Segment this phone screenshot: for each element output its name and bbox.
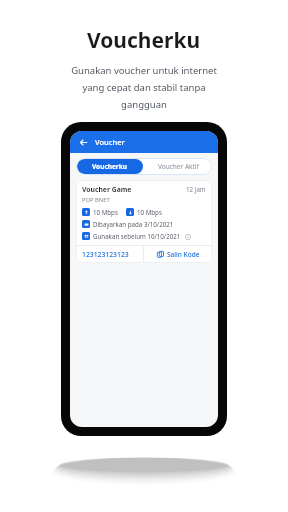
staticText: Salin Kode [167, 250, 200, 259]
staticText: Voucher [95, 137, 125, 147]
staticText: Voucher Aktif [158, 162, 199, 171]
staticText: Dibayarkan pada 3/10/2021 [93, 220, 174, 228]
staticText: Gunakan voucher untuk internet [71, 64, 217, 77]
button[interactable]: Info [184, 233, 191, 240]
button[interactable]: Voucherku [77, 159, 143, 174]
staticText: POP BNET [82, 196, 110, 204]
staticText: Voucherku [92, 162, 128, 171]
staticText: Voucherku [87, 26, 201, 55]
staticText: gangguan [121, 98, 167, 111]
staticText: 123123123123 [82, 250, 129, 259]
button[interactable]: Back [76, 135, 90, 149]
staticText: 12 Jam [186, 185, 206, 193]
staticText: Voucher Game [82, 185, 132, 194]
button[interactable]: Voucher Aktif [144, 158, 212, 175]
staticText: 10 Mbps [137, 208, 162, 216]
button[interactable]: Voucher Game [76, 180, 212, 263]
staticText: Gunakan sebelum 10/10/2021 [93, 232, 181, 240]
staticText: 10 Mbps [93, 208, 118, 216]
button[interactable]: Salin Kode [144, 246, 212, 263]
staticText: yang cepat dan stabil tanpa [82, 81, 206, 94]
